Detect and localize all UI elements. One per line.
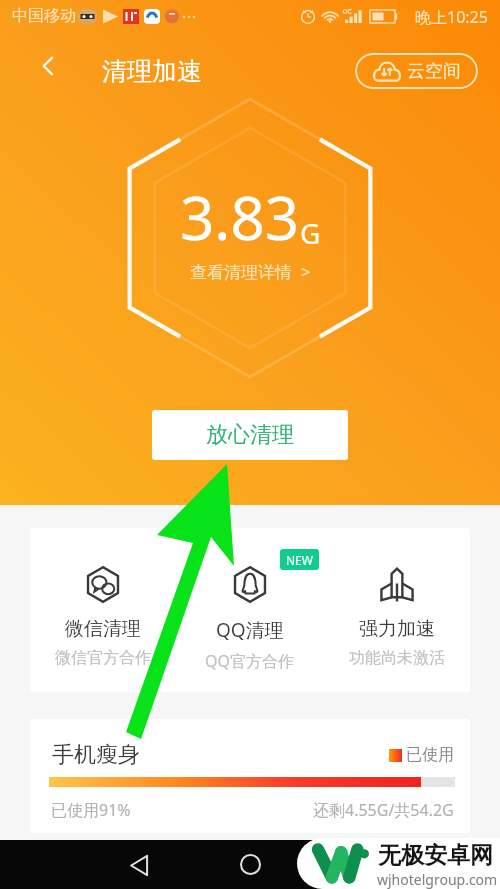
staticText: 手机瘦身 <box>52 741 140 769</box>
button[interactable]: 强力加速 <box>323 528 470 692</box>
staticText: 微信清理 <box>65 617 141 641</box>
staticText: 查看清理详情 > <box>190 260 311 283</box>
button[interactable]: Back <box>26 44 70 88</box>
button[interactable]: 查看清理详情 > <box>186 256 315 287</box>
button[interactable]: 手机瘦身 <box>30 719 470 833</box>
staticText: 微信官方合作 <box>55 648 151 668</box>
staticText: 功能尚未激活 <box>349 648 445 668</box>
staticText: 放心清理 <box>206 421 294 449</box>
button[interactable]: Home <box>225 840 275 889</box>
button[interactable]: 放心清理 <box>152 410 348 460</box>
staticText: NEW <box>286 552 313 568</box>
button[interactable]: Back <box>114 841 164 889</box>
staticText: 晚上10:25 <box>415 6 488 28</box>
staticText: QQ官方合作 <box>205 650 294 672</box>
button[interactable]: QQ清理 <box>176 528 323 692</box>
staticText: 强力加速 <box>359 617 435 641</box>
staticText: wjhotelgroup.com <box>377 870 498 889</box>
staticText: 已使用91% <box>51 799 131 821</box>
staticText: 中国移动 <box>12 6 76 26</box>
staticText: 清理加速 <box>102 56 202 87</box>
staticText: 还剩4.55G/共54.2G <box>313 799 454 821</box>
staticText: QQ清理 <box>216 617 284 643</box>
staticText: 无极安卓网 <box>378 841 493 870</box>
staticText: 已使用 <box>406 745 454 765</box>
staticText: 云空间 <box>407 60 461 83</box>
button[interactable]: 云空间 <box>355 53 478 89</box>
button[interactable]: 微信清理 <box>30 528 176 692</box>
staticText: 3.83 <box>180 176 300 258</box>
staticText: G <box>300 214 321 252</box>
